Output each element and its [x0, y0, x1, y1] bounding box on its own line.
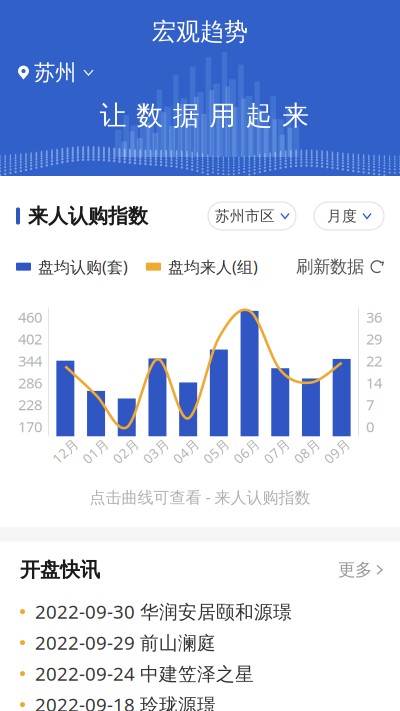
staticText: 更多 [338, 559, 372, 580]
staticText: 盘均认购(套) [38, 256, 128, 277]
staticText: 01月 [81, 442, 110, 460]
staticText: 让数据用起来 [100, 99, 309, 132]
button[interactable]: 苏州市区 [208, 202, 296, 230]
staticText: 刷新数据 [296, 256, 364, 277]
staticText: 286 [18, 373, 42, 392]
staticText: 07月 [262, 442, 291, 460]
button[interactable]: 2022-09-18 玲珑源璟 [0, 689, 400, 711]
staticText: 09月 [322, 442, 351, 460]
button[interactable]: 月度 [314, 202, 384, 230]
staticText: 05月 [202, 442, 231, 460]
staticText: 02月 [111, 442, 140, 460]
staticText: 月度 [327, 207, 357, 225]
button[interactable]: 2022-09-30 华润安居颐和源璟 [0, 596, 400, 627]
staticText: 盘均来人(组) [168, 256, 258, 277]
staticText: 2022-09-30 华润安居颐和源璟 [35, 599, 292, 624]
button[interactable]: 2022-09-24 中建笠泽之星 [0, 658, 400, 689]
staticText: 7 [366, 395, 374, 414]
button[interactable]: 苏州 [18, 59, 93, 86]
staticText: 0 [366, 417, 374, 436]
staticText: 29 [366, 329, 382, 349]
staticText: 12月 [51, 442, 80, 460]
staticText: 2022-09-24 中建笠泽之星 [35, 661, 254, 686]
staticText: 36 [366, 307, 382, 327]
button[interactable]: 2022-09-29 前山澜庭 [0, 627, 400, 658]
staticText: 苏州 [34, 59, 76, 86]
staticText: 苏州市区 [215, 207, 275, 225]
staticText: 2022-09-29 前山澜庭 [35, 630, 216, 655]
button[interactable]: 刷新数据 [296, 256, 384, 277]
staticText: 460 [18, 307, 42, 327]
staticText: 228 [18, 395, 42, 414]
staticText: 06月 [232, 442, 261, 460]
staticText: 03月 [141, 442, 170, 460]
staticText: 宏观趋势 [152, 17, 248, 46]
staticText: 14 [366, 373, 382, 392]
staticText: 344 [18, 351, 42, 371]
staticText: 2022-09-18 玲珑源璟 [35, 692, 216, 711]
staticText: 402 [18, 329, 42, 349]
staticText: 04月 [171, 442, 200, 460]
staticText: 来人认购指数 [28, 204, 148, 228]
button[interactable]: 更多 [338, 559, 382, 580]
staticText: 开盘快讯 [20, 557, 100, 582]
staticText: 170 [18, 417, 42, 436]
staticText: 22 [366, 351, 382, 371]
staticText: 08月 [292, 442, 321, 460]
staticText: 点击曲线可查看 - 来人认购指数 [89, 486, 310, 507]
